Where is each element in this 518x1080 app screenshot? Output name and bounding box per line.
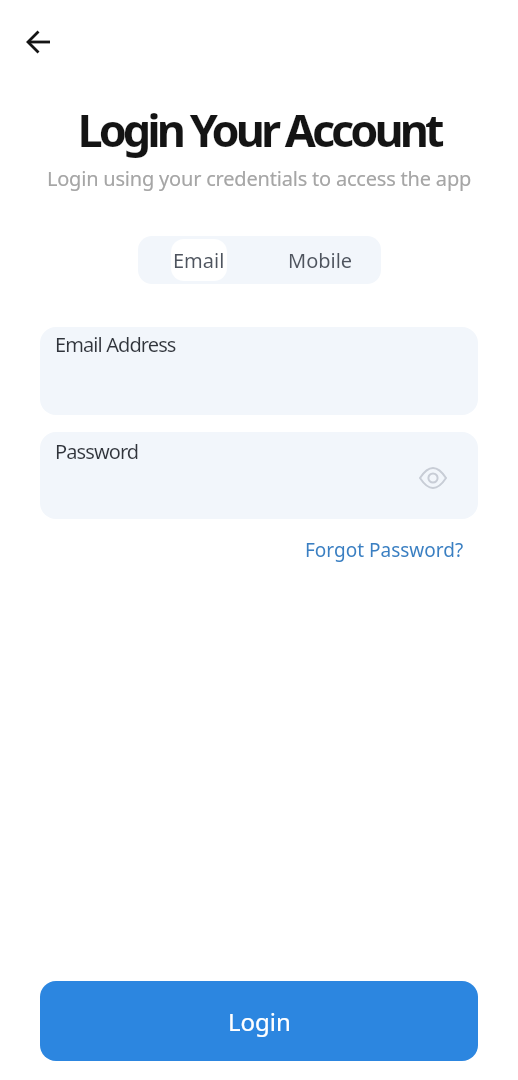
staticText: Forgot Password? xyxy=(305,537,464,563)
staticText: Login xyxy=(228,1005,291,1038)
staticText: Password xyxy=(55,438,139,465)
staticText: Mobile xyxy=(288,247,353,274)
button[interactable]: Mobile xyxy=(259,236,381,284)
staticText: Login using your credentials to access t… xyxy=(0,165,518,192)
button[interactable] xyxy=(418,463,448,493)
button[interactable]: Forgot Password? xyxy=(305,537,464,563)
button[interactable]: Email xyxy=(138,236,259,284)
button[interactable]: Email Address xyxy=(40,327,478,415)
button[interactable]: Login xyxy=(40,981,478,1061)
button[interactable] xyxy=(15,18,63,66)
staticText: Email Address xyxy=(55,331,176,358)
staticText: Email xyxy=(173,247,225,274)
staticText: Login Your Account xyxy=(0,99,518,160)
button[interactable]: Password xyxy=(40,432,478,519)
